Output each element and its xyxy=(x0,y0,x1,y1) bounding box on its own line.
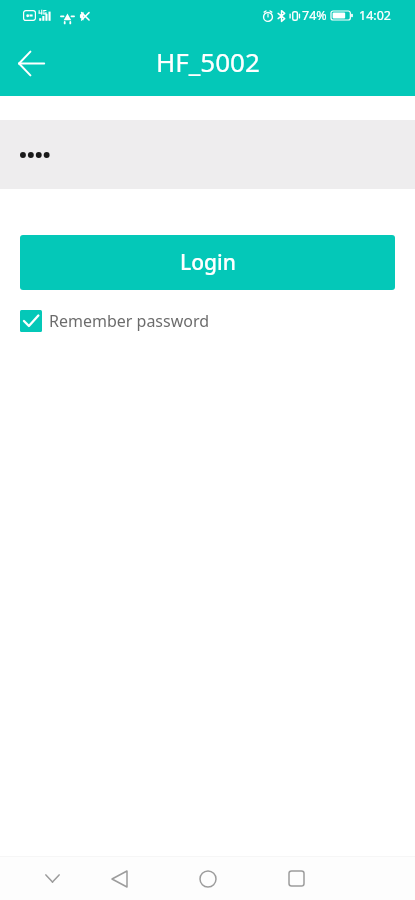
button[interactable] xyxy=(0,120,415,189)
staticText: HF_5002 xyxy=(156,44,260,79)
button[interactable]: Remember password xyxy=(20,310,210,332)
staticText: 14:02 xyxy=(359,7,391,24)
button[interactable]: Home xyxy=(186,857,230,900)
button[interactable]: Recents xyxy=(274,857,318,900)
button[interactable]: Login xyxy=(20,235,395,290)
staticText: Remember password xyxy=(49,310,210,332)
staticText: 74% xyxy=(302,7,327,24)
button[interactable]: Back xyxy=(5,37,57,89)
button[interactable]: Hide keyboard xyxy=(30,857,74,900)
staticText: Login xyxy=(180,248,236,277)
button[interactable]: Back xyxy=(97,857,141,900)
